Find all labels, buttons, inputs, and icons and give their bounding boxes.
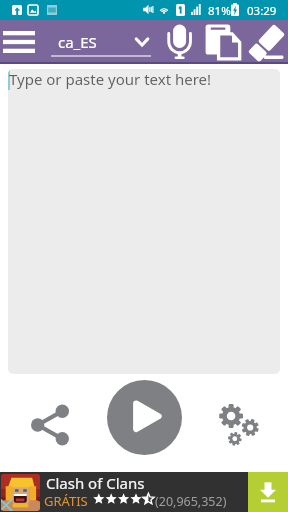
- button[interactable]: Type or paste your text here!: [8, 69, 280, 374]
- staticText: 81%: [208, 3, 231, 19]
- staticText: 03:29: [247, 3, 277, 19]
- button[interactable]: ca_ES: [44, 22, 156, 62]
- button[interactable]: Play: [107, 380, 182, 455]
- button[interactable]: Clash of Clans: [0, 472, 248, 512]
- button[interactable]: Settings: [211, 399, 263, 449]
- button[interactable]: Install: [248, 472, 288, 512]
- button[interactable]: Copy: [201, 21, 243, 63]
- button[interactable]: Menu: [0, 24, 38, 60]
- button[interactable]: Clear: [244, 21, 288, 63]
- staticText: (20,965,352): [155, 493, 227, 510]
- staticText: Type or paste your text here!: [9, 69, 212, 89]
- staticText: ca_ES: [58, 32, 97, 52]
- button[interactable]: Share: [22, 397, 78, 453]
- staticText: GRÁTIS: [44, 492, 88, 510]
- staticText: Clash of Clans: [46, 473, 145, 493]
- button[interactable]: Voice input: [163, 21, 197, 63]
